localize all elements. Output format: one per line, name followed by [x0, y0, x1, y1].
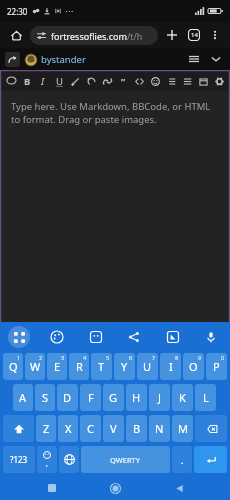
- button[interactable]: New tab: [162, 25, 182, 45]
- button[interactable]: R: [69, 353, 89, 380]
- button[interactable]: fortressoflies.com/t/h: [37, 26, 151, 45]
- button[interactable]: Themes: [46, 326, 68, 348]
- button[interactable]: Home: [103, 476, 127, 500]
- button[interactable]: E: [47, 353, 67, 380]
- staticText: X: [65, 421, 72, 436]
- staticText: J: [158, 390, 162, 405]
- staticText: 5: [106, 354, 110, 361]
- staticText: B: [133, 421, 141, 436]
- button[interactable]: list: [164, 74, 178, 88]
- button[interactable]: QWERTY: [81, 446, 170, 473]
- button[interactable]: bystander: [25, 53, 86, 66]
- button[interactable]: M: [172, 415, 193, 442]
- button[interactable]: Tabs: [184, 25, 204, 45]
- staticText: bystander: [41, 53, 86, 66]
- button[interactable]: Stickers: [85, 326, 107, 348]
- button[interactable]: L: [195, 384, 216, 411]
- button[interactable]: More options: [206, 26, 224, 44]
- button[interactable]: N: [149, 415, 170, 442]
- staticText: E: [54, 359, 61, 374]
- staticText: W: [30, 359, 41, 374]
- button[interactable]: Back: [167, 476, 191, 500]
- button[interactable]: U: [137, 353, 158, 380]
- button[interactable]: W: [25, 353, 45, 380]
- button[interactable]: ”: [116, 74, 130, 88]
- button[interactable]: Emoji: [37, 446, 57, 473]
- button[interactable]: calendar: [196, 74, 210, 88]
- staticText: 22:30: [7, 6, 28, 17]
- staticText: Q: [9, 359, 18, 374]
- staticText: 0: [221, 354, 225, 361]
- button[interactable]: B: [20, 74, 34, 88]
- button[interactable]: Toolbar: [8, 326, 30, 348]
- button[interactable]: Menu: [185, 50, 203, 68]
- button[interactable]: U: [52, 74, 66, 88]
- staticText: .: [181, 454, 184, 466]
- button[interactable]: code: [132, 74, 146, 88]
- staticText: R: [76, 359, 83, 374]
- button[interactable]: Y: [114, 353, 135, 380]
- staticText: 3: [61, 354, 65, 361]
- button[interactable]: F: [80, 384, 101, 411]
- button[interactable]: settings: [212, 74, 226, 88]
- button[interactable]: ?123: [3, 446, 35, 473]
- staticText: A: [19, 390, 27, 405]
- button[interactable]: emoji: [148, 74, 162, 88]
- button[interactable]: undo: [84, 74, 98, 88]
- button[interactable]: Clipboard: [162, 326, 184, 348]
- staticText: 9: [198, 354, 202, 361]
- button[interactable]: G: [103, 384, 124, 411]
- staticText: O: [189, 359, 198, 374]
- staticText: B: [24, 75, 31, 88]
- button[interactable]: Reply: [5, 52, 20, 67]
- button[interactable]: I: [36, 74, 50, 88]
- staticText: ?123: [10, 454, 28, 465]
- staticText: QWERTY: [110, 455, 141, 465]
- staticText: 8: [175, 354, 179, 361]
- button[interactable]: X: [58, 415, 78, 442]
- staticText: 7: [152, 354, 156, 361]
- button[interactable]: ordered list: [180, 74, 194, 88]
- button[interactable]: highlight: [68, 74, 82, 88]
- button[interactable]: D: [57, 384, 78, 411]
- staticText: V: [110, 421, 117, 436]
- staticText: Y: [121, 359, 128, 374]
- staticText: F: [88, 390, 94, 405]
- button[interactable]: Type here. Use Markdown, BBCode, or HTML…: [0, 91, 230, 322]
- button[interactable]: Backspace: [195, 415, 227, 442]
- staticText: ⋯: [65, 7, 73, 16]
- button[interactable]: P: [206, 353, 227, 380]
- staticText: G: [109, 390, 118, 405]
- button[interactable]: Recents: [40, 476, 64, 500]
- button[interactable]: C: [80, 415, 101, 442]
- button[interactable]: H: [126, 384, 147, 411]
- button[interactable]: Home: [6, 25, 26, 45]
- button[interactable]: Z: [36, 415, 56, 442]
- button[interactable]: link: [100, 74, 114, 88]
- button[interactable]: Share: [123, 326, 145, 348]
- button[interactable]: B: [126, 415, 147, 442]
- button[interactable]: O: [183, 353, 204, 380]
- button[interactable]: Shift: [3, 415, 34, 442]
- button[interactable]: A: [13, 384, 33, 411]
- button[interactable]: quote: [4, 74, 18, 88]
- staticText: Type here. Use Markdown, BBCode, or HTML…: [11, 100, 216, 126]
- button[interactable]: T: [91, 353, 112, 380]
- button[interactable]: Q: [3, 353, 23, 380]
- staticText: I: [169, 359, 173, 374]
- button[interactable]: .: [172, 446, 192, 473]
- button[interactable]: K: [172, 384, 193, 411]
- button[interactable]: Enter: [194, 446, 227, 473]
- staticText: P: [213, 359, 220, 374]
- button[interactable]: Change language: [59, 446, 79, 473]
- button[interactable]: J: [149, 384, 170, 411]
- button[interactable]: Expand: [207, 50, 225, 68]
- staticText: 4: [83, 354, 87, 361]
- button[interactable]: Voice input: [200, 326, 222, 348]
- button[interactable]: I: [160, 353, 181, 380]
- staticText: H: [132, 390, 141, 405]
- staticText: U: [143, 359, 152, 374]
- button[interactable]: S: [35, 384, 55, 411]
- staticText: 14: [191, 31, 198, 39]
- button[interactable]: V: [103, 415, 124, 442]
